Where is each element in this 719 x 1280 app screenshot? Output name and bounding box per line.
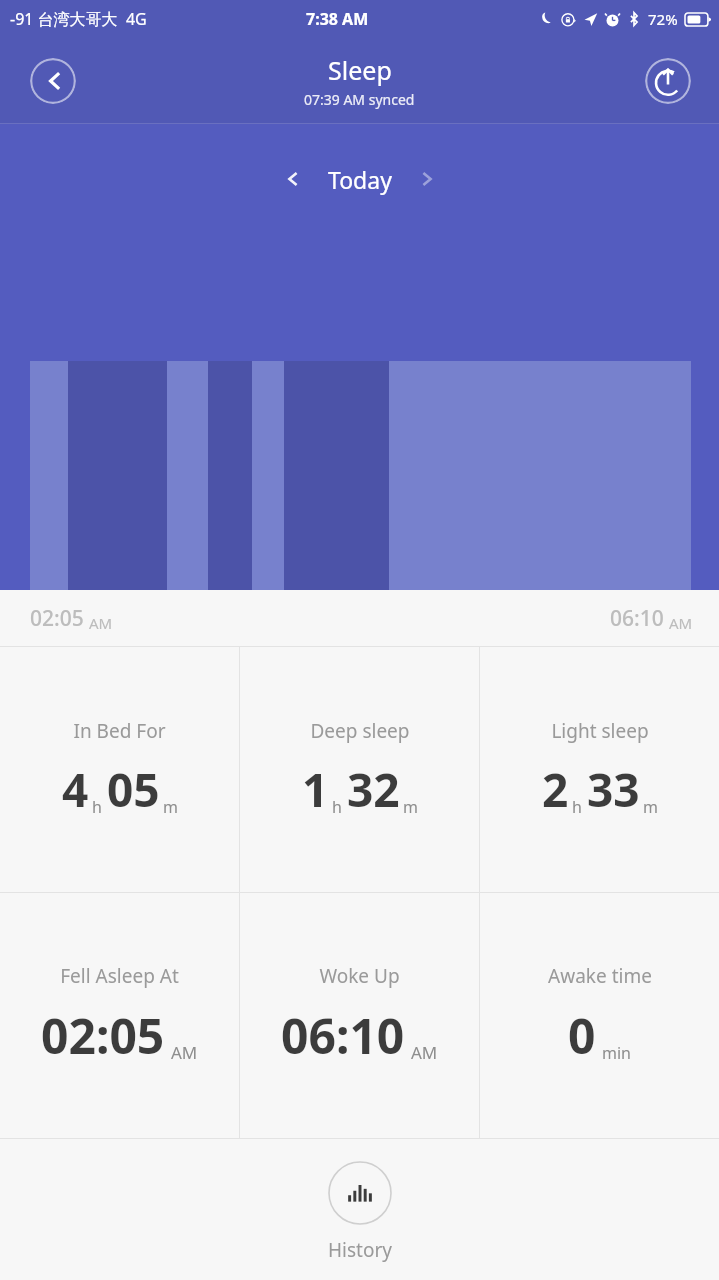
staticText: Fell Asleep At	[60, 963, 179, 989]
staticText: AM	[171, 1041, 198, 1064]
staticText: History	[328, 1237, 392, 1263]
button[interactable]: Deep sleep	[240, 647, 479, 892]
button[interactable]: Fell Asleep At	[0, 893, 239, 1138]
staticText: Deep sleep	[310, 718, 410, 744]
staticText: AM	[411, 1041, 438, 1064]
staticText: 0	[568, 1003, 596, 1068]
staticText: m	[643, 796, 658, 818]
staticText: In Bed For	[73, 718, 166, 744]
staticText: m	[163, 796, 178, 818]
staticText: -91 台湾大哥大 4G	[10, 8, 147, 30]
staticText: Light sleep	[551, 718, 649, 744]
staticText: m	[403, 796, 418, 818]
staticText: h	[572, 796, 582, 818]
staticText: 72%	[648, 9, 678, 29]
staticText: 06:10	[610, 604, 664, 633]
button[interactable]: Back	[30, 58, 76, 104]
button[interactable]: Woke Up	[240, 893, 479, 1138]
staticText: Sleep	[328, 53, 392, 87]
staticText: Awake time	[548, 963, 652, 989]
staticText: 05	[107, 758, 160, 821]
staticText: 33	[587, 758, 640, 821]
staticText: 7:38 AM	[306, 8, 369, 30]
staticText: Woke Up	[319, 963, 400, 989]
button[interactable]: Awake time	[480, 893, 719, 1138]
button[interactable]: In Bed For	[0, 647, 239, 892]
staticText: 07:39 AM synced	[304, 90, 415, 109]
button[interactable]: Light sleep	[480, 647, 719, 892]
button[interactable]: Sync	[645, 58, 691, 104]
staticText: Today	[328, 164, 392, 195]
staticText: min	[602, 1042, 631, 1064]
staticText: h	[332, 796, 342, 818]
staticText: 06:10	[281, 1003, 405, 1068]
staticText: 4	[62, 758, 89, 821]
staticText: 2	[542, 758, 569, 821]
button[interactable]: Today	[316, 160, 404, 199]
staticText: h	[92, 796, 102, 818]
staticText: AM	[89, 613, 113, 633]
staticText: 1	[302, 758, 329, 821]
staticText: 02:05	[41, 1003, 165, 1068]
button[interactable]: History	[0, 1144, 719, 1280]
staticText: 02:05	[30, 604, 84, 633]
staticText: AM	[669, 613, 693, 633]
button[interactable]: Previous day	[270, 156, 316, 202]
staticText: 32	[347, 758, 400, 821]
button[interactable]: Next day	[404, 156, 450, 202]
